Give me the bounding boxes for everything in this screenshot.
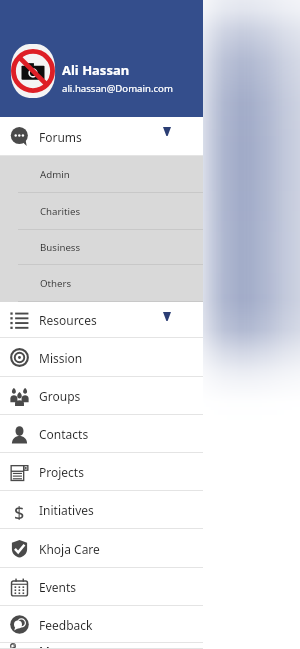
staticText: Mission bbox=[39, 350, 83, 366]
staticText: $ bbox=[14, 501, 25, 520]
button[interactable]: Business bbox=[0, 230, 203, 265]
staticText: Others bbox=[40, 277, 72, 290]
staticText: ali.hassan@Domain.com bbox=[62, 82, 173, 95]
button[interactable]: Charities bbox=[0, 193, 203, 230]
staticText: Forums bbox=[39, 129, 82, 145]
staticText: Initiatives bbox=[39, 502, 94, 518]
other: Expand Forums bbox=[163, 127, 171, 136]
staticText: Feedback bbox=[39, 617, 93, 633]
button[interactable]: Khoja Care bbox=[0, 529, 203, 568]
button[interactable]: More bbox=[0, 643, 203, 649]
staticText: Resources bbox=[39, 312, 97, 328]
staticText: Ali Hassan bbox=[62, 61, 130, 79]
button[interactable]: Events bbox=[0, 568, 203, 606]
staticText: Charities bbox=[40, 205, 81, 218]
staticText: Business bbox=[40, 241, 81, 254]
button[interactable]: Resources bbox=[0, 302, 203, 338]
button[interactable]: Feedback bbox=[0, 606, 203, 643]
button[interactable]: $ bbox=[0, 491, 203, 529]
staticText: Projects bbox=[39, 464, 84, 480]
staticText: Groups bbox=[39, 388, 81, 404]
button[interactable]: Admin bbox=[0, 156, 203, 193]
button[interactable]: Mission bbox=[0, 338, 203, 377]
button[interactable]: Forums bbox=[0, 117, 203, 156]
button[interactable]: Profile photo bbox=[0, 0, 203, 117]
staticText: More bbox=[39, 643, 69, 649]
staticText: Khoja Care bbox=[39, 541, 100, 557]
staticText: Admin bbox=[40, 168, 70, 181]
button[interactable]: Groups bbox=[0, 377, 203, 415]
staticText: Events bbox=[39, 579, 77, 595]
other: Profile photo bbox=[10, 43, 56, 99]
button[interactable]: Projects bbox=[0, 453, 203, 491]
staticText: Contacts bbox=[39, 426, 89, 442]
other: Expand Resources bbox=[163, 312, 171, 321]
button[interactable]: Contacts bbox=[0, 415, 203, 453]
button[interactable]: Others bbox=[0, 265, 203, 302]
